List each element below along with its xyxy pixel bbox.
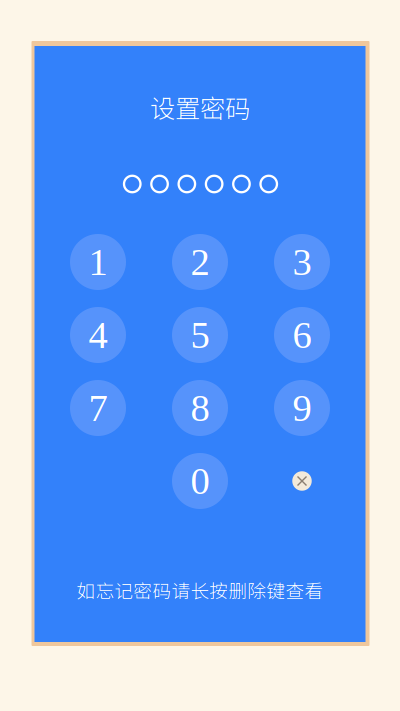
staticText: 9 xyxy=(292,387,311,429)
staticText: 6 xyxy=(292,314,311,356)
button[interactable]: 6 xyxy=(274,307,330,363)
staticText: 4 xyxy=(88,314,107,356)
staticText: 2 xyxy=(190,241,209,283)
button[interactable]: 1 xyxy=(70,234,126,290)
staticText: 3 xyxy=(292,241,311,283)
button[interactable]: 8 xyxy=(172,380,228,436)
staticText: 0 xyxy=(190,460,209,502)
staticText: 5 xyxy=(190,314,209,356)
button[interactable]: 5 xyxy=(172,307,228,363)
button[interactable]: Delete xyxy=(274,453,330,509)
button[interactable]: 3 xyxy=(274,234,330,290)
button[interactable]: 4 xyxy=(70,307,126,363)
button[interactable]: 2 xyxy=(172,234,228,290)
button[interactable]: 7 xyxy=(70,380,126,436)
staticText: 如忘记密码请长按删除键查看 xyxy=(76,577,323,603)
staticText: 设置密码 xyxy=(150,89,250,125)
staticText: 8 xyxy=(190,387,209,429)
button[interactable]: 0 xyxy=(172,453,228,509)
staticText: 1 xyxy=(88,241,107,283)
button[interactable]: 9 xyxy=(274,380,330,436)
staticText: 7 xyxy=(88,387,107,429)
